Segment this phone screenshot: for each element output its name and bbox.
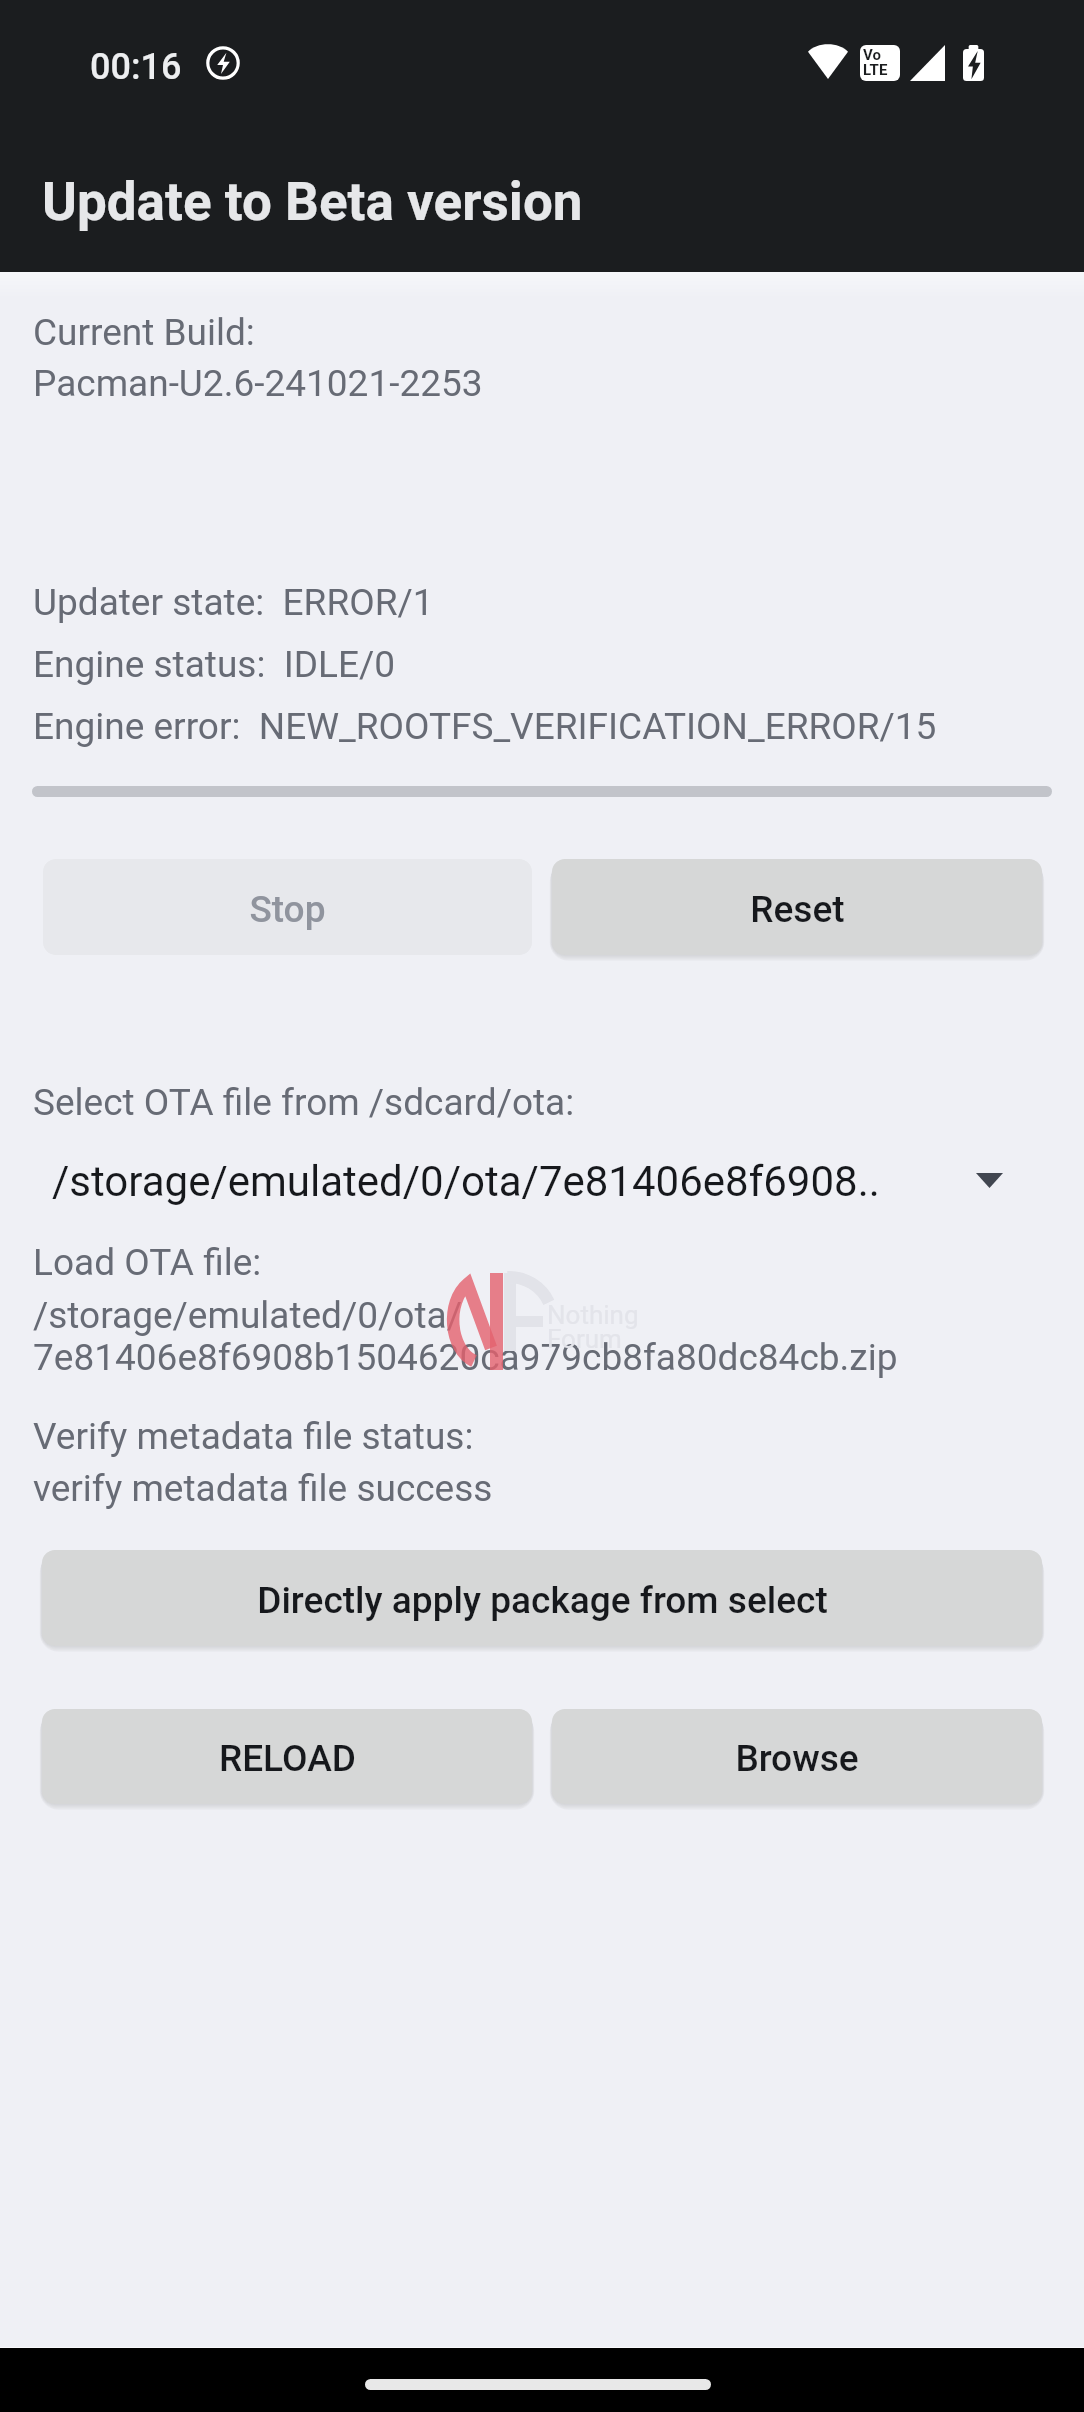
staticText: Forum (547, 1324, 622, 1354)
staticText: Verify metadata file status: (33, 1415, 474, 1458)
staticText: /storage/emulated/0/ota/ (33, 1294, 462, 1337)
staticText: Stop (249, 888, 326, 931)
staticText: RELOAD (219, 1737, 356, 1780)
staticText: Updater state: ERROR/1 (33, 581, 434, 624)
staticText: verify metadata file success (33, 1467, 493, 1510)
staticText: Select OTA file from /sdcard/ota: (33, 1081, 575, 1124)
button[interactable]: Directly apply package from select (42, 1550, 1042, 1646)
staticText: 00:16 (90, 46, 182, 88)
staticText: /storage/emulated/0/ota/7e81406e8f6908.. (52, 1157, 880, 1206)
button[interactable]: RELOAD (42, 1709, 532, 1804)
staticText: Vo LTE (863, 46, 888, 79)
staticText: Reset (750, 888, 845, 931)
button[interactable]: Stop (43, 859, 532, 955)
button[interactable]: Reset (552, 859, 1042, 955)
staticText: Current Build: (33, 311, 255, 354)
staticText: Nothing (547, 1300, 639, 1330)
staticText: Pacman-U2.6-241021-2253 (33, 362, 483, 405)
staticText: Directly apply package from select (257, 1579, 828, 1622)
staticText: Update to Beta version (42, 171, 583, 233)
staticText: Engine error: NEW_ROOTFS_VERIFICATION_ER… (33, 705, 937, 748)
staticText: Load OTA file: (33, 1241, 262, 1284)
button[interactable]: Select OTA file, /storage/emulated/0/ota… (32, 1140, 1052, 1226)
staticText: Browse (735, 1737, 859, 1780)
staticText: Engine status: IDLE/0 (33, 643, 396, 686)
staticText: 7e81406e8f6908b1504620ca979cb8fa80dc84cb… (33, 1336, 898, 1379)
button[interactable]: Browse (552, 1709, 1042, 1804)
